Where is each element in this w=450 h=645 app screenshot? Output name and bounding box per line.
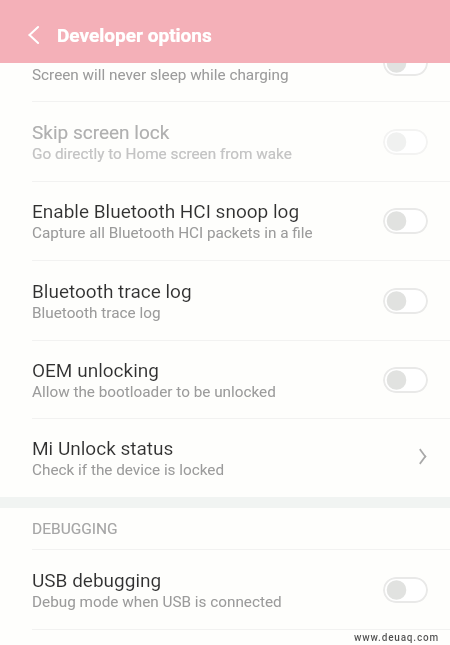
button[interactable]: Toggle xyxy=(383,208,428,234)
button[interactable]: Stay awake xyxy=(0,23,450,102)
staticText: Bluetooth trace log xyxy=(32,280,192,302)
button[interactable]: Back xyxy=(18,16,50,48)
button[interactable]: Toggle xyxy=(383,367,428,393)
button[interactable]: Skip screen lock xyxy=(0,102,450,181)
staticText: Bluetooth trace log xyxy=(32,304,161,322)
button[interactable]: Enable Bluetooth HCI snoop log xyxy=(0,182,450,260)
button[interactable]: Mi Unlock status xyxy=(0,419,450,497)
staticText: Skip screen lock xyxy=(32,121,170,143)
staticText: Mi Unlock status xyxy=(32,437,174,459)
staticText: DEBUGGING xyxy=(32,520,118,538)
button[interactable]: Toggle xyxy=(383,577,428,603)
button[interactable]: Bluetooth trace log xyxy=(0,261,450,340)
button[interactable]: Toggle xyxy=(383,288,428,314)
staticText: www.deuaq.com xyxy=(354,632,439,644)
staticText: Stay awake xyxy=(32,42,128,64)
button[interactable]: Toggle xyxy=(383,50,428,76)
staticText: Capture all Bluetooth HCI packets in a f… xyxy=(32,224,313,242)
staticText: Go directly to Home screen from wake xyxy=(32,145,292,163)
staticText: Allow the bootloader to be unlocked xyxy=(32,383,276,401)
staticText: Developer options xyxy=(57,24,212,46)
staticText: Screen will never sleep while charging xyxy=(32,66,289,84)
button[interactable]: Open Mi Unlock status xyxy=(412,446,436,470)
button[interactable]: USB debugging xyxy=(0,550,450,629)
staticText: USB debugging xyxy=(32,569,162,591)
staticText: Debug mode when USB is connected xyxy=(32,593,282,611)
staticText: Check if the device is locked xyxy=(32,461,225,479)
staticText: OEM unlocking xyxy=(32,359,159,381)
button[interactable]: Toggle xyxy=(383,129,428,155)
button[interactable]: OEM unlocking xyxy=(0,341,450,418)
staticText: Enable Bluetooth HCI snoop log xyxy=(32,200,300,222)
